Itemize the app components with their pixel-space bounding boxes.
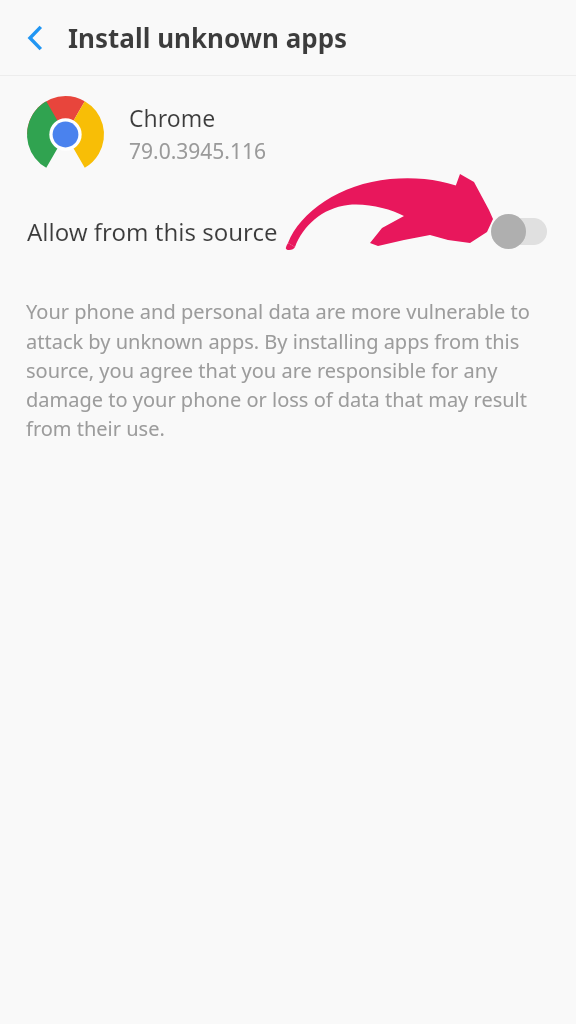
staticText: Chrome: [129, 102, 216, 133]
staticText: 79.0.3945.116: [129, 137, 267, 166]
button[interactable]: Allow from this source: [0, 192, 576, 270]
button[interactable]: Allow from this source toggle: [491, 209, 547, 253]
staticText: Install unknown apps: [68, 20, 348, 55]
staticText: Allow from this source: [27, 215, 278, 248]
button[interactable]: Chrome: [0, 76, 576, 192]
staticText: Your phone and personal data are more vu…: [26, 298, 550, 442]
button[interactable]: Back: [8, 10, 64, 66]
